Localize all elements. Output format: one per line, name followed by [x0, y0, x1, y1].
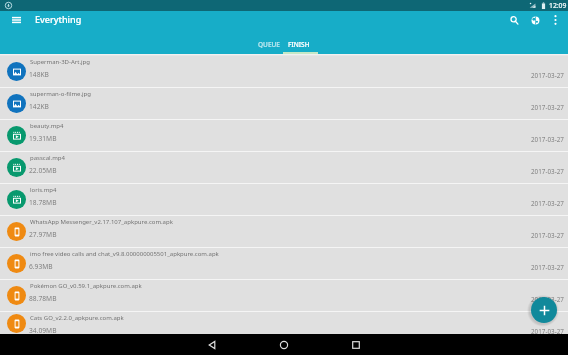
button[interactable]: FINISH: [284, 29, 314, 54]
staticText: 2017-03-27: [531, 135, 564, 144]
staticText: 88.78MB: [29, 294, 57, 303]
staticText: 148KB: [29, 70, 49, 79]
staticText: Pokémon GO_v0.59.1_apkpure.com.apk: [30, 282, 513, 290]
staticText: 2017-03-27: [531, 103, 564, 112]
button[interactable]: Open browser: [525, 11, 545, 29]
button[interactable]: Recent apps: [342, 334, 370, 355]
staticText: 2017-03-27: [531, 231, 564, 240]
staticText: 142KB: [29, 102, 49, 111]
button[interactable]: imo free video calls and chat_v9.8.00000…: [0, 248, 568, 279]
button[interactable]: Home: [270, 334, 298, 355]
button[interactable]: passcal.mp4: [0, 152, 568, 183]
staticText: 18.78MB: [29, 198, 57, 207]
button[interactable]: Superman-3D-Art.jpg: [0, 56, 568, 87]
button[interactable]: WhatsApp Messenger_v2.17.107_apkpure.com…: [0, 216, 568, 247]
staticText: superman-o-filme.jpg: [30, 90, 513, 98]
staticText: 19.31MB: [29, 134, 57, 143]
staticText: 22.05MB: [29, 166, 57, 175]
staticText: loris.mp4: [30, 186, 513, 194]
button[interactable]: Search: [504, 11, 524, 29]
button[interactable]: Open navigation drawer: [6, 11, 26, 29]
button[interactable]: superman-o-filme.jpg: [0, 88, 568, 119]
button[interactable]: QUEUE: [254, 29, 284, 54]
button[interactable]: More options: [546, 11, 564, 29]
staticText: 6.93MB: [29, 262, 53, 271]
staticText: 27.97MB: [29, 230, 57, 239]
staticText: passcal.mp4: [30, 154, 513, 162]
staticText: 12:09: [549, 1, 567, 10]
button[interactable]: Pokémon GO_v0.59.1_apkpure.com.apk: [0, 280, 568, 311]
staticText: imo free video calls and chat_v9.8.00000…: [30, 250, 513, 258]
staticText: 2017-03-27: [531, 71, 564, 80]
staticText: 2017-03-27: [531, 167, 564, 176]
staticText: QUEUE: [258, 40, 280, 49]
staticText: Everything: [35, 13, 82, 25]
staticText: 2017-03-27: [531, 263, 564, 272]
button[interactable]: Back: [198, 334, 226, 355]
staticText: 2017-03-27: [531, 327, 564, 336]
button[interactable]: loris.mp4: [0, 184, 568, 215]
staticText: 2017-03-27: [531, 199, 564, 208]
staticText: FINISH: [288, 40, 310, 49]
button[interactable]: beauty.mp4: [0, 120, 568, 151]
staticText: 2017-03-27: [531, 295, 564, 304]
button[interactable]: Cats GO_v2.2.0_apkpure.com.apk: [0, 312, 568, 334]
staticText: Superman-3D-Art.jpg: [30, 58, 513, 66]
staticText: Cats GO_v2.2.0_apkpure.com.apk: [30, 314, 513, 322]
staticText: 34.09MB: [29, 326, 57, 335]
button[interactable]: Add download: [531, 297, 557, 323]
staticText: beauty.mp4: [30, 122, 513, 130]
staticText: WhatsApp Messenger_v2.17.107_apkpure.com…: [30, 218, 513, 226]
